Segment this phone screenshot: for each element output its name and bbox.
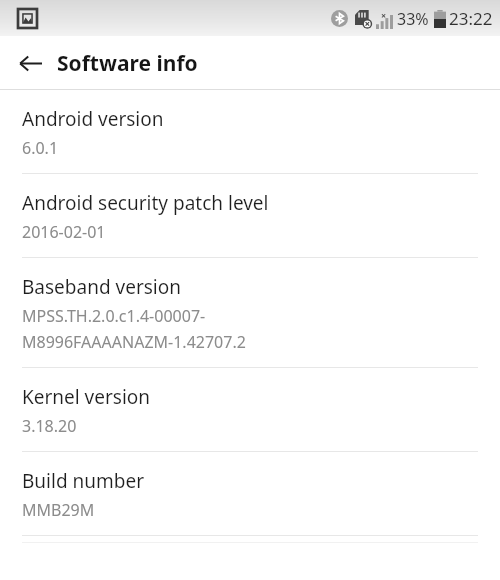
staticText: 2016-02-01 xyxy=(22,221,106,243)
staticText: Android security patch level xyxy=(22,190,269,216)
staticText: Build number xyxy=(22,468,145,494)
staticText: 23:22 xyxy=(449,7,493,30)
button[interactable]: Kernel version xyxy=(0,368,500,452)
staticText: 6.0.1 xyxy=(22,137,59,159)
button[interactable]: Android security patch level xyxy=(0,174,500,258)
button[interactable]: Back xyxy=(8,41,52,85)
staticText: Android version xyxy=(22,106,164,132)
staticText: Software info xyxy=(57,49,198,78)
staticText: 3.18.20 xyxy=(22,415,77,437)
staticText: M8996FAAAANAZM-1.42707.2 xyxy=(22,331,246,353)
staticText: MMB29M xyxy=(22,499,95,521)
staticText: × xyxy=(381,9,387,21)
button[interactable]: Android version xyxy=(0,90,500,174)
staticText: 33% xyxy=(397,8,429,30)
staticText: Baseband version xyxy=(22,274,181,300)
staticText: MPSS.TH.2.0.c1.4-00007- xyxy=(22,305,206,327)
staticText: Kernel version xyxy=(22,384,151,410)
button[interactable]: Build number xyxy=(0,452,500,536)
button[interactable]: Baseband version xyxy=(0,258,500,368)
